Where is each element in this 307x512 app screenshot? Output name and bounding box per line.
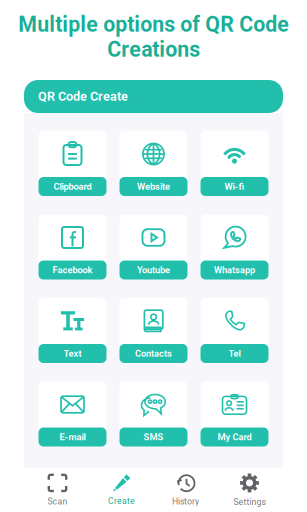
button[interactable]: Contacts xyxy=(119,298,187,363)
button[interactable]: Facebook xyxy=(38,214,106,279)
button[interactable]: Wi-fi xyxy=(200,131,268,196)
staticText: Facebook xyxy=(52,264,92,275)
staticText: My Card xyxy=(217,431,251,442)
staticText: Scan xyxy=(47,496,67,507)
button[interactable]: My Card xyxy=(200,381,268,446)
staticText: History xyxy=(172,496,199,507)
staticText: SMS xyxy=(143,431,163,442)
staticText: Multiple options of QR Code Creations xyxy=(18,12,289,62)
button[interactable]: E-mail xyxy=(38,381,106,446)
button[interactable]: Text xyxy=(38,298,106,363)
button[interactable]: Settings xyxy=(217,468,281,512)
button[interactable]: Website xyxy=(119,131,187,196)
button[interactable]: SMS xyxy=(119,381,187,446)
button[interactable]: Clipboard xyxy=(38,131,106,196)
staticText: Settings xyxy=(233,497,265,507)
staticText: Whatsapp xyxy=(214,264,255,275)
staticText: QR Code Create xyxy=(38,89,128,104)
staticText: Create xyxy=(108,496,135,506)
button[interactable]: History xyxy=(153,468,217,512)
staticText: E-mail xyxy=(59,431,85,442)
staticText: Website xyxy=(137,181,170,192)
button[interactable]: Tel xyxy=(200,298,268,363)
staticText: Tel xyxy=(228,348,240,359)
button[interactable]: Create xyxy=(89,468,153,512)
button[interactable]: Youtube xyxy=(119,214,187,279)
staticText: Wi-fi xyxy=(224,181,244,192)
button[interactable]: Whatsapp xyxy=(200,214,268,279)
staticText: Clipboard xyxy=(53,181,91,192)
staticText: Contacts xyxy=(135,348,172,359)
staticText: Text xyxy=(63,348,81,359)
staticText: Youtube xyxy=(137,264,170,275)
button[interactable]: Scan xyxy=(25,468,89,512)
